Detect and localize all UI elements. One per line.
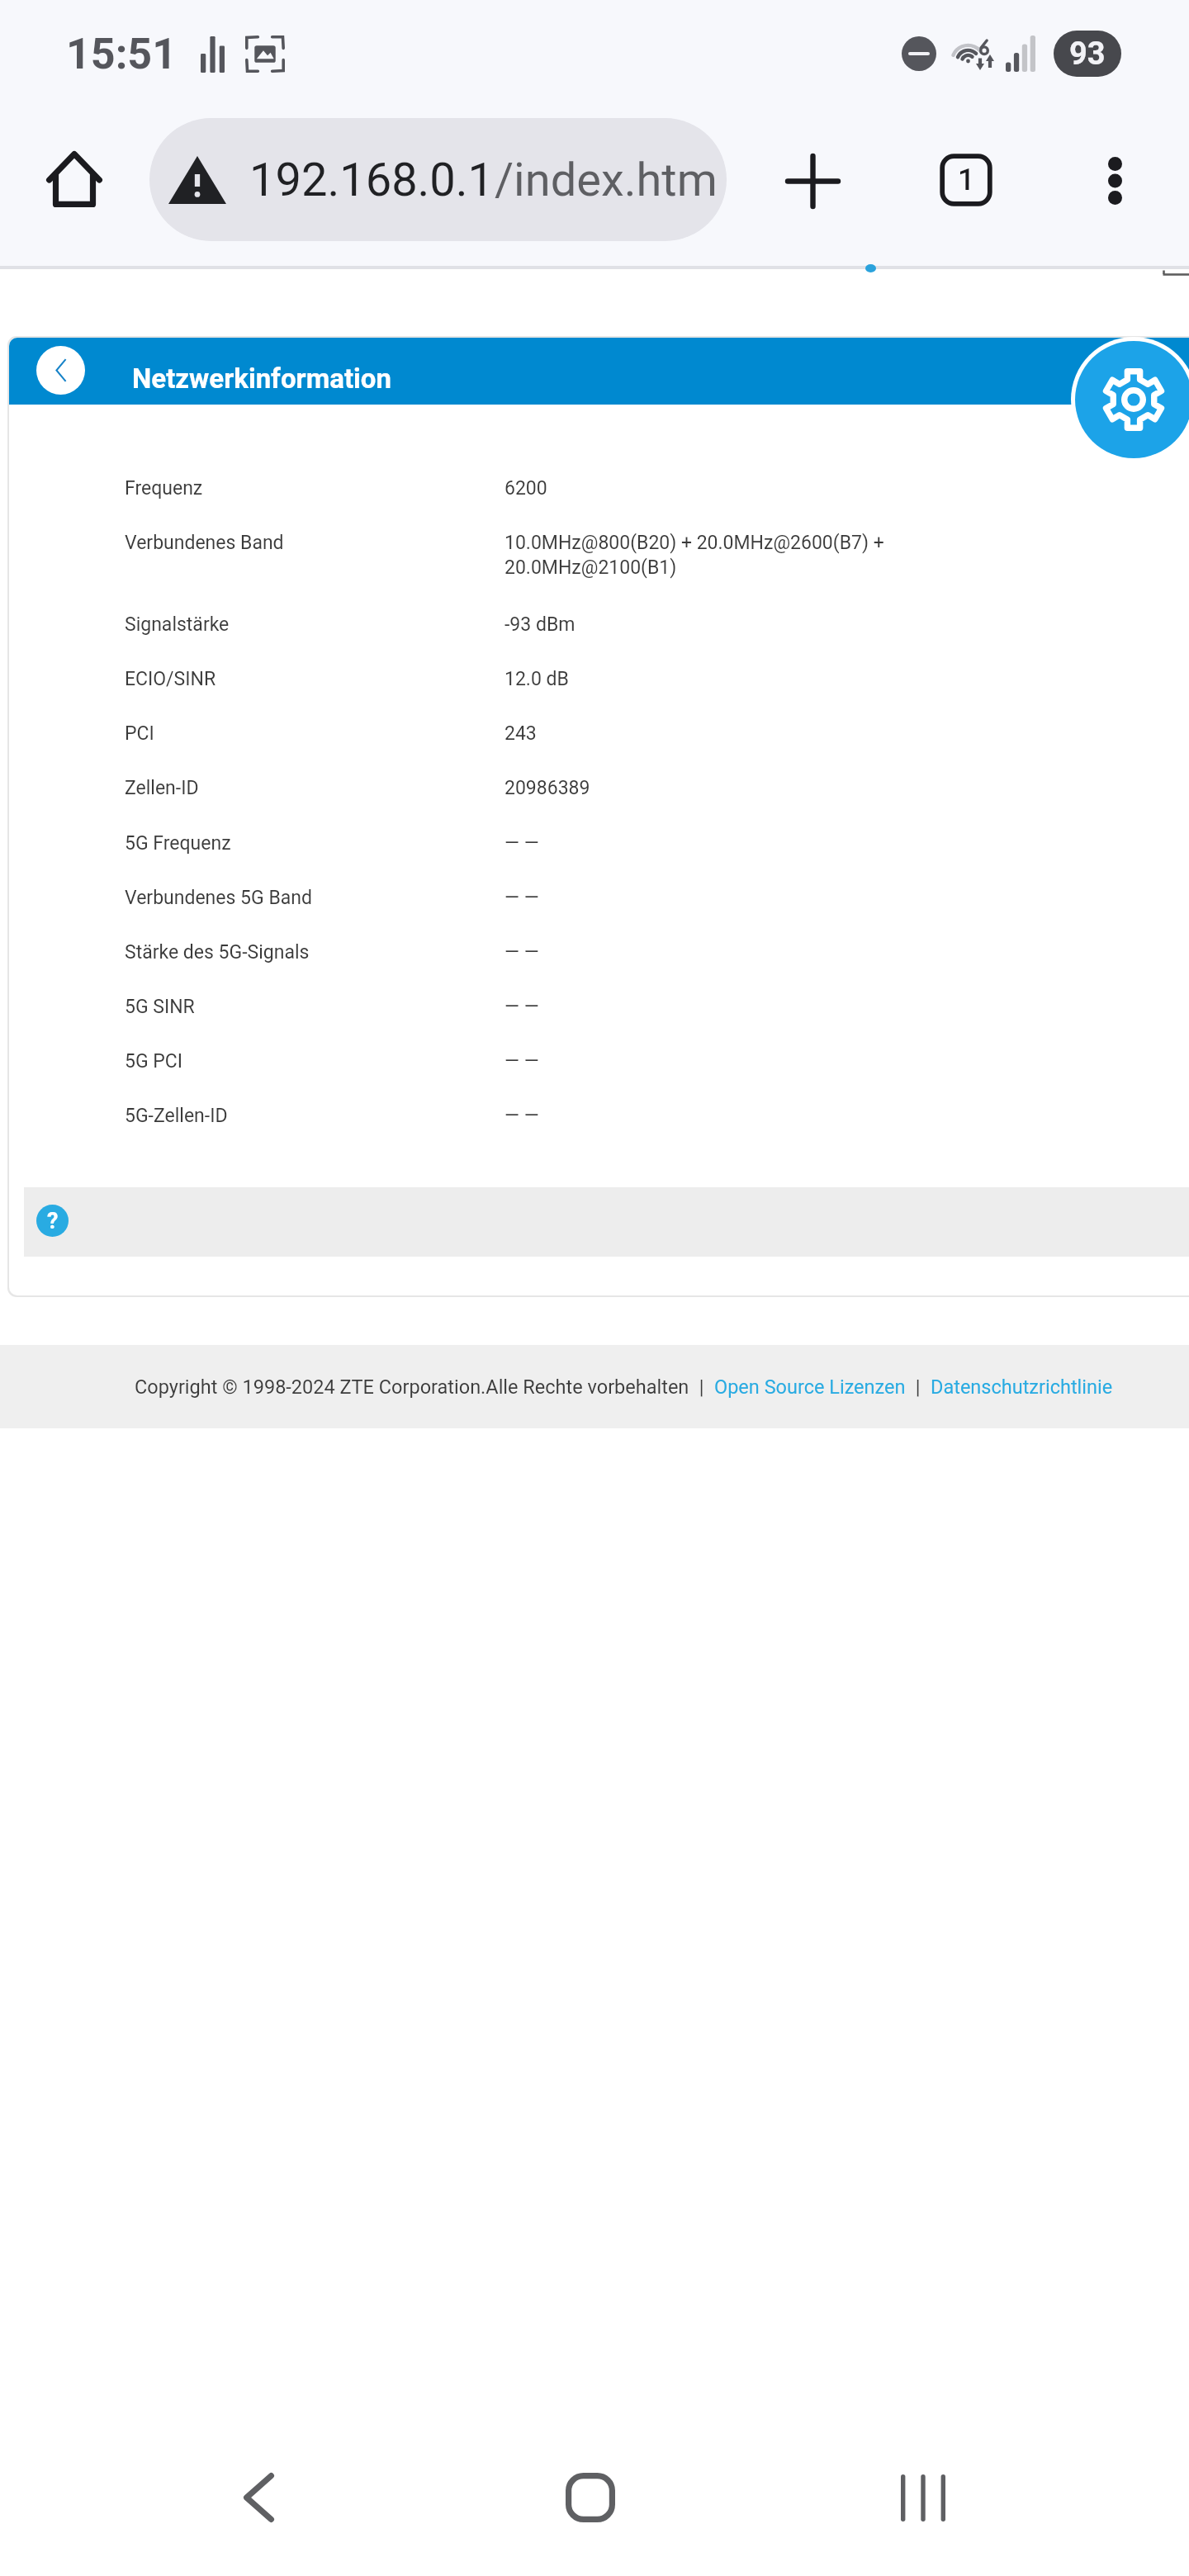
staticText: Signalstärke	[125, 613, 504, 636]
staticText: Verbundenes Band	[125, 532, 504, 554]
staticText: 15:51	[66, 29, 178, 79]
staticText: — —	[504, 832, 539, 855]
staticText: 12.0 dB	[504, 668, 569, 690]
button[interactable]: Tabs	[925, 139, 1007, 221]
staticText: 5G PCI	[125, 1050, 504, 1073]
staticText: |	[689, 1376, 714, 1399]
staticText: — —	[504, 996, 539, 1018]
staticText: Stärke des 5G-Signals	[125, 941, 504, 964]
staticText: 192.168.0.1	[249, 153, 495, 207]
staticText: Copyright © 1998-2024 ZTE Corporation.Al…	[135, 1376, 689, 1399]
button[interactable]: New tab	[771, 140, 854, 222]
staticText: — —	[504, 1105, 539, 1127]
button[interactable]: Settings	[1075, 341, 1189, 458]
staticText: 20986389	[504, 777, 590, 799]
staticText: |	[906, 1376, 931, 1399]
staticText: ECIO/SINR	[125, 668, 504, 690]
button[interactable]: Back	[197, 2436, 320, 2559]
staticText: /index.htm	[495, 153, 718, 207]
button[interactable]: Datenschutzrichtlinie	[931, 1376, 1113, 1399]
button[interactable]: Help	[36, 1205, 69, 1237]
staticText: Frequenz	[125, 477, 504, 500]
button[interactable]: Home	[528, 2436, 652, 2559]
staticText: — —	[504, 1050, 539, 1073]
staticText: ?	[47, 1208, 59, 1234]
staticText: 243	[504, 722, 537, 745]
staticText: — —	[504, 887, 539, 909]
staticText: 20.0MHz@2100(B1)	[504, 556, 677, 579]
staticText: Verbundenes 5G Band	[125, 887, 504, 909]
button[interactable]: Open Source Lizenzen	[714, 1376, 906, 1399]
staticText: PCI	[125, 722, 504, 745]
staticText: 6200	[504, 477, 547, 500]
button[interactable]: 192.168.0.1	[149, 118, 727, 241]
staticText: 1	[958, 163, 975, 197]
staticText: — —	[504, 941, 539, 964]
staticText: 10.0MHz@800(B20) + 20.0MHz@2600(B7) +	[504, 532, 884, 554]
button[interactable]: Back	[36, 346, 85, 395]
staticText: -93 dBm	[504, 613, 576, 636]
staticText: 93	[1069, 36, 1106, 73]
staticText: 5G-Zellen-ID	[125, 1105, 504, 1127]
staticText: 5G SINR	[125, 996, 504, 1018]
button[interactable]: Recent apps	[861, 2436, 985, 2559]
staticText: Netzwerkinformation	[132, 362, 391, 395]
button[interactable]: Home	[33, 138, 116, 220]
staticText: 5G Frequenz	[125, 832, 504, 855]
staticText: Zellen-ID	[125, 777, 504, 799]
button[interactable]: More options	[1073, 140, 1156, 222]
